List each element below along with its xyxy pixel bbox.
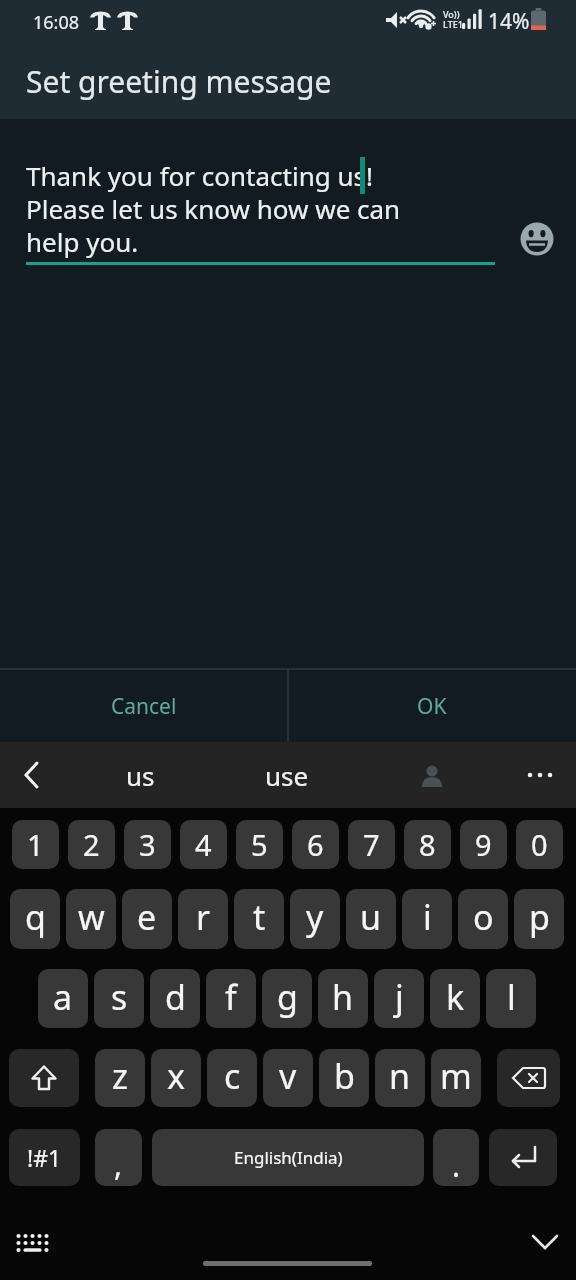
- staticText: z: [112, 1053, 128, 1099]
- staticText: n: [389, 1053, 411, 1099]
- button[interactable]: [8, 750, 56, 800]
- button[interactable]: p: [514, 889, 564, 949]
- staticText: w: [78, 894, 105, 940]
- button[interactable]: y: [290, 889, 340, 949]
- staticText: 2: [83, 825, 100, 864]
- button[interactable]: i: [402, 889, 452, 949]
- button[interactable]: v: [263, 1049, 313, 1107]
- staticText: us: [126, 758, 155, 793]
- button[interactable]: 1: [12, 820, 59, 869]
- button[interactable]: [497, 1049, 560, 1107]
- staticText: use: [265, 758, 309, 793]
- staticText: Thank you for contacting us! Please let …: [26, 158, 401, 259]
- button[interactable]: a: [38, 969, 88, 1028]
- staticText: a: [53, 974, 73, 1020]
- button[interactable]: g: [262, 969, 312, 1028]
- button[interactable]: s: [94, 969, 144, 1028]
- button[interactable]: l: [486, 969, 536, 1028]
- button[interactable]: OK: [288, 670, 576, 742]
- staticText: c: [224, 1053, 241, 1099]
- staticText: ,: [114, 1144, 123, 1185]
- button[interactable]: q: [10, 889, 60, 949]
- staticText: .: [452, 1145, 461, 1186]
- staticText: j: [395, 974, 404, 1020]
- button[interactable]: 0: [516, 820, 563, 869]
- button[interactable]: u: [346, 889, 396, 949]
- button[interactable]: 4: [180, 820, 227, 869]
- staticText: x: [167, 1053, 185, 1099]
- staticText: Vo)): [443, 8, 460, 20]
- staticText: Cancel: [111, 692, 177, 721]
- staticText: 14%: [488, 7, 530, 36]
- button[interactable]: ,: [95, 1129, 142, 1186]
- button[interactable]: [515, 217, 559, 261]
- staticText: Set greeting message: [26, 61, 332, 102]
- button[interactable]: o: [458, 889, 508, 949]
- button[interactable]: [408, 750, 456, 800]
- staticText: p: [529, 894, 550, 940]
- button[interactable]: us: [90, 750, 190, 800]
- button[interactable]: z: [95, 1049, 145, 1107]
- staticText: English(India): [234, 1146, 343, 1169]
- staticText: 8: [419, 825, 436, 864]
- staticText: l: [507, 974, 516, 1020]
- staticText: y: [306, 894, 324, 940]
- button[interactable]: !#1: [9, 1129, 80, 1186]
- button[interactable]: 7: [348, 820, 395, 869]
- button[interactable]: 8: [404, 820, 451, 869]
- staticText: e: [137, 894, 157, 940]
- button[interactable]: .: [433, 1129, 479, 1186]
- staticText: q: [25, 894, 46, 940]
- button[interactable]: m: [431, 1049, 481, 1107]
- staticText: u: [360, 894, 382, 940]
- staticText: b: [334, 1053, 355, 1099]
- button[interactable]: b: [319, 1049, 369, 1107]
- button[interactable]: d: [150, 969, 200, 1028]
- staticText: h: [332, 974, 354, 1020]
- button[interactable]: f: [206, 969, 256, 1028]
- button[interactable]: 9: [460, 820, 507, 869]
- staticText: t: [253, 894, 266, 940]
- button[interactable]: t: [234, 889, 284, 949]
- staticText: v: [279, 1053, 297, 1099]
- staticText: 0: [531, 825, 548, 864]
- button[interactable]: English(India): [152, 1129, 424, 1186]
- button[interactable]: j: [374, 969, 424, 1028]
- button[interactable]: k: [430, 969, 480, 1028]
- button[interactable]: use: [237, 750, 337, 800]
- button[interactable]: e: [122, 889, 172, 949]
- button[interactable]: n: [375, 1049, 425, 1107]
- button[interactable]: [489, 1129, 557, 1186]
- button[interactable]: r: [178, 889, 228, 949]
- staticText: s: [111, 974, 128, 1020]
- staticText: d: [165, 974, 186, 1020]
- button[interactable]: Cancel: [0, 670, 288, 742]
- staticText: 9: [475, 825, 492, 864]
- staticText: 5: [251, 825, 268, 864]
- staticText: 1: [27, 825, 44, 864]
- staticText: 7: [363, 825, 380, 864]
- staticText: OK: [417, 692, 447, 721]
- button[interactable]: 6: [292, 820, 339, 869]
- button[interactable]: w: [66, 889, 116, 949]
- staticText: i: [423, 894, 432, 940]
- button[interactable]: [525, 1225, 565, 1261]
- staticText: f: [225, 974, 237, 1020]
- button[interactable]: 2: [68, 820, 115, 869]
- staticText: m: [440, 1053, 472, 1099]
- staticText: o: [473, 894, 494, 940]
- button[interactable]: 5: [236, 820, 283, 869]
- button[interactable]: c: [207, 1049, 257, 1107]
- button[interactable]: h: [318, 969, 368, 1028]
- button[interactable]: 3: [124, 820, 171, 869]
- button[interactable]: x: [151, 1049, 201, 1107]
- staticText: 6: [307, 825, 324, 864]
- button[interactable]: [8, 1222, 56, 1264]
- button[interactable]: [9, 1049, 79, 1107]
- staticText: 3: [139, 825, 156, 864]
- button[interactable]: [516, 750, 564, 800]
- staticText: 16:08: [33, 10, 80, 35]
- staticText: k: [446, 974, 465, 1020]
- staticText: r: [196, 894, 211, 940]
- staticText: 4: [195, 825, 212, 864]
